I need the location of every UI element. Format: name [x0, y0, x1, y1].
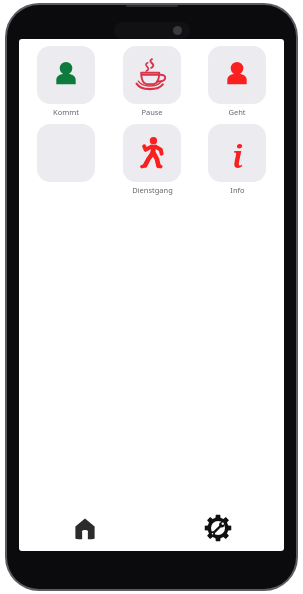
button[interactable] [37, 124, 95, 182]
staticText: Info [230, 185, 245, 195]
staticText: i [232, 136, 243, 170]
button[interactable]: Settings [151, 505, 284, 551]
staticText: Kommt [53, 107, 79, 117]
staticText: Geht [228, 107, 246, 117]
button[interactable]: Home [19, 505, 151, 551]
staticText: Dienstgang [132, 185, 173, 195]
button[interactable] [208, 46, 266, 104]
button[interactable] [123, 46, 181, 104]
button[interactable] [123, 124, 181, 182]
button[interactable]: i [208, 124, 266, 182]
button[interactable] [37, 46, 95, 104]
staticText: Pause [141, 107, 163, 117]
